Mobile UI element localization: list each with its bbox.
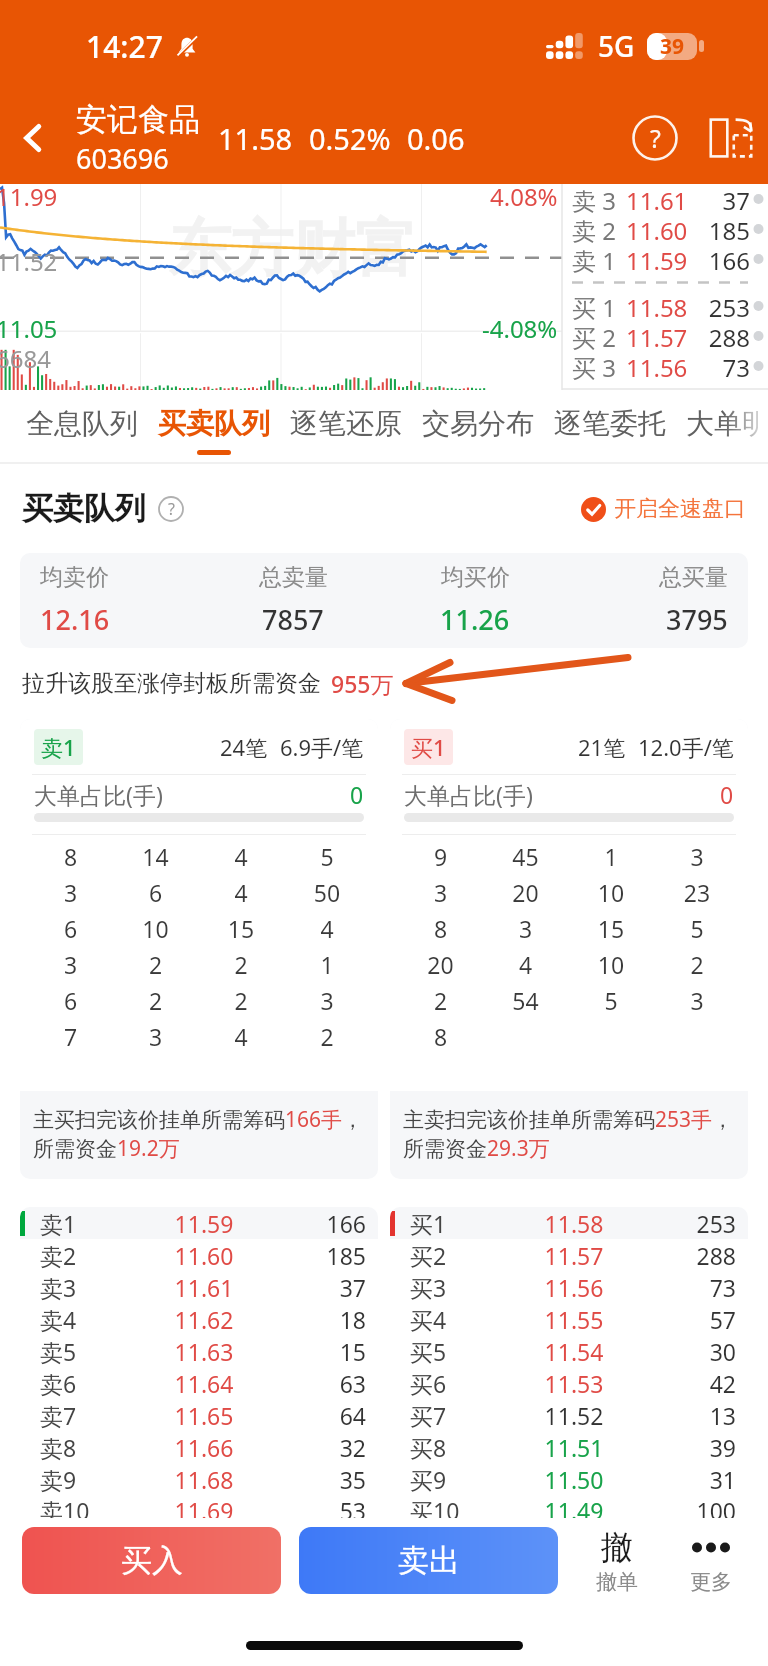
button[interactable]: 买3 (390, 1271, 748, 1303)
staticText: 288 (672, 1240, 736, 1271)
staticText: 1 (568, 841, 654, 872)
staticText: 5G (598, 27, 635, 65)
button[interactable]: More (664, 1525, 758, 1595)
staticText: 买入 (121, 1541, 183, 1580)
staticText: 4 (483, 949, 568, 980)
staticText: 3 (654, 985, 740, 1016)
staticText: 11.58 (218, 119, 293, 158)
button[interactable]: 买6 (390, 1367, 748, 1399)
staticText: 39 (660, 32, 685, 59)
staticText: 166 (698, 244, 750, 274)
staticText: 3 (398, 877, 483, 908)
button[interactable]: 卖3 (20, 1271, 378, 1303)
staticText: 安记食品 (76, 100, 200, 139)
staticText: 卖9 (40, 1464, 106, 1495)
staticText: 11.05 (0, 312, 58, 345)
staticText: 42 (672, 1368, 736, 1399)
staticText: 2 (198, 949, 284, 980)
staticText: 11.63 (106, 1336, 302, 1367)
staticText: 11.56 (626, 351, 688, 381)
button[interactable]: 全息队列 (16, 390, 148, 464)
button[interactable]: 卖1 (20, 1207, 378, 1239)
button[interactable]: 买 1 (572, 291, 762, 321)
button[interactable]: Compare (700, 107, 762, 169)
staticText: ? (650, 121, 661, 155)
staticText: 11.58 (476, 1208, 672, 1239)
staticText: 54 (483, 985, 568, 1016)
button[interactable]: 卖4 (20, 1303, 378, 1335)
staticText: 15 (302, 1336, 366, 1367)
button[interactable]: Back (0, 105, 66, 171)
staticText: 7 (28, 1021, 113, 1052)
button[interactable]: 买10 (390, 1495, 748, 1518)
button[interactable]: 买8 (390, 1431, 748, 1463)
staticText: 39 (672, 1432, 736, 1463)
staticText: 5 (568, 985, 654, 1016)
staticText: 73 (698, 351, 750, 381)
button[interactable]: 卖出 (299, 1527, 558, 1594)
staticText: 均买价 (441, 563, 510, 592)
staticText: 11.62 (106, 1304, 302, 1335)
staticText: 总买量 (659, 563, 728, 592)
button[interactable]: 撤 (570, 1525, 664, 1595)
button[interactable]: 买 2 (572, 321, 762, 351)
button[interactable]: Info (158, 496, 184, 522)
button[interactable]: 买9 (390, 1463, 748, 1495)
staticText: 32 (302, 1432, 366, 1463)
button[interactable]: 卖 3 (572, 184, 762, 214)
staticText: 15 (568, 913, 654, 944)
staticText: 7857 (262, 601, 324, 638)
staticText: 东方财富 (169, 210, 417, 288)
staticText: 撤 (601, 1527, 633, 1567)
button[interactable]: 卖9 (20, 1463, 378, 1495)
button[interactable]: 逐笔委托 (544, 390, 676, 464)
button[interactable]: 卖10 (20, 1495, 378, 1518)
staticText: 35 (302, 1464, 366, 1495)
button[interactable]: 买 3 (572, 351, 762, 381)
button[interactable]: 买7 (390, 1399, 748, 1431)
button[interactable]: 买2 (390, 1239, 748, 1271)
staticText: -4.08% (482, 312, 558, 345)
staticText: 3 (113, 1021, 198, 1052)
button[interactable]: 开启全速盘口 (581, 495, 746, 523)
staticText: 交易分布 (422, 406, 534, 441)
staticText: 23 (654, 877, 740, 908)
staticText: 买 2 (572, 321, 616, 351)
staticText: 大单明细 (686, 406, 758, 441)
button[interactable]: 买5 (390, 1335, 748, 1367)
button[interactable]: 买4 (390, 1303, 748, 1335)
staticText: 11.55 (476, 1304, 672, 1335)
button[interactable]: 卖7 (20, 1399, 378, 1431)
button[interactable]: 交易分布 (412, 390, 544, 464)
staticText: 11.60 (106, 1240, 302, 1271)
button[interactable]: 逐笔还原 (280, 390, 412, 464)
staticText: 11.65 (106, 1400, 302, 1431)
button[interactable]: 买1 (390, 1207, 748, 1239)
button[interactable]: Help (624, 107, 686, 169)
staticText: 253 (672, 1208, 736, 1239)
staticText: 4 (198, 1021, 284, 1052)
staticText: 所需资金29.3万 (403, 1134, 550, 1163)
staticText: 11.64 (106, 1368, 302, 1399)
staticText: 买4 (410, 1304, 476, 1335)
button[interactable]: 卖 2 (572, 214, 762, 244)
button[interactable]: 卖8 (20, 1431, 378, 1463)
button[interactable]: 卖2 (20, 1239, 378, 1271)
button[interactable]: 卖6 (20, 1367, 378, 1399)
button[interactable]: 大单明细 (676, 390, 768, 464)
button[interactable]: 买入 (22, 1527, 281, 1594)
button[interactable]: 卖 1 (572, 244, 762, 274)
staticText: 6684 (0, 342, 51, 375)
button[interactable]: 买卖队列 (148, 390, 280, 464)
staticText: 14:27 (86, 26, 163, 67)
staticText: 100 (672, 1495, 736, 1518)
staticText: 逐笔还原 (290, 406, 402, 441)
button[interactable]: 卖5 (20, 1335, 378, 1367)
staticText: ? (168, 498, 175, 520)
staticText: 买7 (410, 1400, 476, 1431)
staticText: 64 (302, 1400, 366, 1431)
staticText: 卖出 (398, 1541, 460, 1580)
